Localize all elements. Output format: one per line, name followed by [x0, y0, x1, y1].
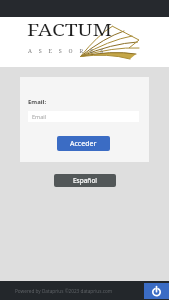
staticText: Acceder — [70, 139, 97, 149]
staticText: Email — [32, 113, 47, 120]
button[interactable]: Power / log out — [144, 283, 169, 299]
staticText: FACTUM — [27, 20, 112, 41]
staticText: A S E S O R E S — [28, 47, 106, 54]
staticText: Español — [73, 176, 97, 185]
button[interactable]: Acceder — [57, 136, 110, 151]
button[interactable]: Email — [28, 111, 139, 122]
button[interactable]: Español — [54, 174, 116, 187]
staticText: Powered by Dataprius ©2023 dataprius.com — [15, 288, 113, 294]
staticText: Email: — [28, 98, 47, 106]
